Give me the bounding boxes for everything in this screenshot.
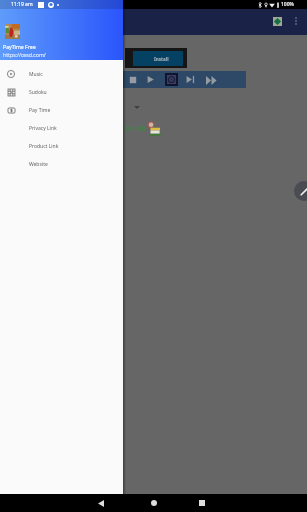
- staticText: 11:19 am: [11, 1, 33, 8]
- staticText: Website: [29, 161, 48, 168]
- button[interactable]: Install: [133, 51, 183, 66]
- button[interactable]: App icon: [269, 13, 286, 30]
- staticText: Music: [29, 71, 43, 78]
- button[interactable]: Record: [165, 73, 178, 86]
- button[interactable]: Product Link: [0, 137, 123, 155]
- button[interactable]: More options: [288, 13, 303, 28]
- staticText: PayTime Free: [3, 43, 36, 50]
- button[interactable]: Back: [94, 496, 108, 510]
- staticText: Install: [154, 56, 169, 62]
- button[interactable]: Music: [0, 65, 123, 83]
- staticText: 100%: [281, 1, 294, 8]
- staticText: Sudoku: [29, 89, 47, 96]
- button[interactable]: Privacy Link: [0, 119, 123, 137]
- staticText: 09:00: [125, 124, 146, 133]
- button[interactable]: Recents: [195, 496, 209, 510]
- button[interactable]: Sudoku: [0, 83, 123, 101]
- button[interactable]: Website: [0, 155, 123, 173]
- staticText: Pay Time: [29, 107, 51, 114]
- staticText: Privacy Link: [29, 125, 57, 132]
- button[interactable]: Home: [147, 496, 161, 510]
- button[interactable]: Edit: [294, 181, 307, 201]
- button[interactable]: Pay Time: [0, 101, 123, 119]
- staticText: Product Link: [29, 143, 59, 150]
- staticText: https://cesd.com/: [3, 51, 46, 58]
